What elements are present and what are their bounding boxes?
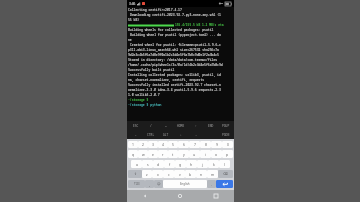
staticText: ~/storage $ <box>128 98 149 102</box>
button[interactable]: d <box>153 160 164 168</box>
button[interactable]: l <box>219 160 230 168</box>
staticText: p311-abi3-linux_aarch64.whl size=267532 … <box>128 48 219 52</box>
staticText: ne <box>128 38 132 42</box>
button[interactable]: END <box>203 121 218 130</box>
staticText: u <box>193 152 196 157</box>
staticText: CTRL <box>147 133 155 137</box>
button[interactable]: u <box>189 150 200 158</box>
staticText: 9 <box>216 142 218 147</box>
button[interactable]: g <box>175 160 186 168</box>
staticText: 5 <box>172 142 174 147</box>
button[interactable]: t <box>168 150 178 158</box>
staticText: t <box>172 152 174 157</box>
staticText: j <box>202 162 203 167</box>
button[interactable]: 2 <box>138 141 148 148</box>
staticText: Collecting certifi>=2017.4.17 <box>128 8 182 12</box>
staticText: w <box>142 152 145 157</box>
button[interactable]: w <box>138 150 148 158</box>
button[interactable]: / <box>143 121 158 130</box>
staticText: Successfully installed certifi-2023.92.7… <box>128 83 221 87</box>
button[interactable]: ← <box>128 130 143 139</box>
button[interactable]: r <box>158 150 168 158</box>
button[interactable]: y <box>178 150 189 158</box>
button[interactable]: 1 <box>128 141 138 148</box>
staticText: 8 <box>205 142 207 147</box>
button[interactable]: PGUP <box>218 121 233 130</box>
button[interactable]: p <box>222 150 233 158</box>
button[interactable]: Space <box>163 180 207 188</box>
button[interactable]: Emoji <box>154 180 163 188</box>
staticText: k <box>213 162 215 167</box>
staticText: 4 <box>162 142 164 147</box>
staticText: ormalizer-3.3.0 idna-3.4 psutil-5.9.6 re… <box>128 88 221 92</box>
staticText: ↑ <box>195 124 197 128</box>
staticText: i <box>205 152 206 157</box>
staticText: , <box>149 182 150 187</box>
button[interactable]: h <box>186 160 197 168</box>
button[interactable]: Enter <box>216 180 233 188</box>
staticText: ← <box>135 133 137 137</box>
button[interactable]: — <box>158 121 173 130</box>
button[interactable]: Home <box>162 190 198 202</box>
staticText: q <box>132 152 135 157</box>
button[interactable]: 4 <box>158 141 168 148</box>
staticText: n <box>200 172 203 177</box>
button[interactable]: , <box>145 180 154 188</box>
button[interactable]: Backspace <box>218 170 233 178</box>
button[interactable]: z <box>142 170 152 178</box>
button[interactable]: ESC <box>128 121 143 130</box>
button[interactable]: i <box>200 150 211 158</box>
staticText: 9d2e3c4b5f6a7d8e9f0a1b2c3d4e5f6a7b8c9d0e… <box>128 53 219 57</box>
button[interactable]: ?123 <box>128 180 145 188</box>
button[interactable]: Recents <box>198 190 234 202</box>
staticText: l <box>224 162 225 167</box>
button[interactable]: k <box>208 160 219 168</box>
staticText: a <box>136 162 138 167</box>
staticText: 3 <box>152 142 154 147</box>
staticText: PGUP <box>222 124 230 128</box>
staticText: ⇧ <box>134 172 137 176</box>
button[interactable]: Back <box>127 190 162 202</box>
button[interactable]: a <box>131 160 142 168</box>
button[interactable]: j <box>197 160 208 168</box>
button[interactable]: 0 <box>222 141 233 148</box>
button[interactable]: CTRL <box>143 130 158 139</box>
staticText: Downloading certifi-2023.92.7-py3-none-a… <box>130 13 221 17</box>
staticText: Installing collected packages: urllib3, … <box>128 73 221 77</box>
button[interactable]: b <box>185 170 196 178</box>
button[interactable]: 7 <box>189 141 200 148</box>
staticText: PGDN <box>222 133 230 137</box>
staticText: Stored in directory: /data/data/com.term… <box>128 58 218 62</box>
button[interactable]: c <box>163 170 174 178</box>
button[interactable]: f <box>164 160 175 168</box>
button[interactable]: 9 <box>211 141 222 148</box>
button[interactable]: x <box>152 170 163 178</box>
button[interactable]: 5 <box>168 141 178 148</box>
button[interactable]: s <box>142 160 153 168</box>
button[interactable]: ALT <box>158 130 173 139</box>
button[interactable]: m <box>207 170 218 178</box>
button[interactable]: PGDN <box>218 130 233 139</box>
button[interactable]: e <box>148 150 158 158</box>
button[interactable]: Shift <box>128 170 142 178</box>
staticText: d <box>157 162 160 167</box>
staticText: 3:46 <box>129 2 136 6</box>
button[interactable]: v <box>174 170 185 178</box>
button[interactable]: q <box>128 150 138 158</box>
button[interactable]: 6 <box>178 141 189 148</box>
button[interactable]: o <box>211 150 222 158</box>
staticText: ALT <box>163 133 169 137</box>
button[interactable]: n <box>196 170 207 178</box>
staticText: r <box>162 152 164 157</box>
staticText: e <box>152 152 154 157</box>
staticText: ESC <box>133 124 139 128</box>
button[interactable]: 8 <box>200 141 211 148</box>
button[interactable]: . <box>207 180 216 188</box>
button[interactable]: HOME <box>173 121 188 130</box>
staticText: h <box>190 162 193 167</box>
button[interactable]: 3 <box>148 141 158 148</box>
